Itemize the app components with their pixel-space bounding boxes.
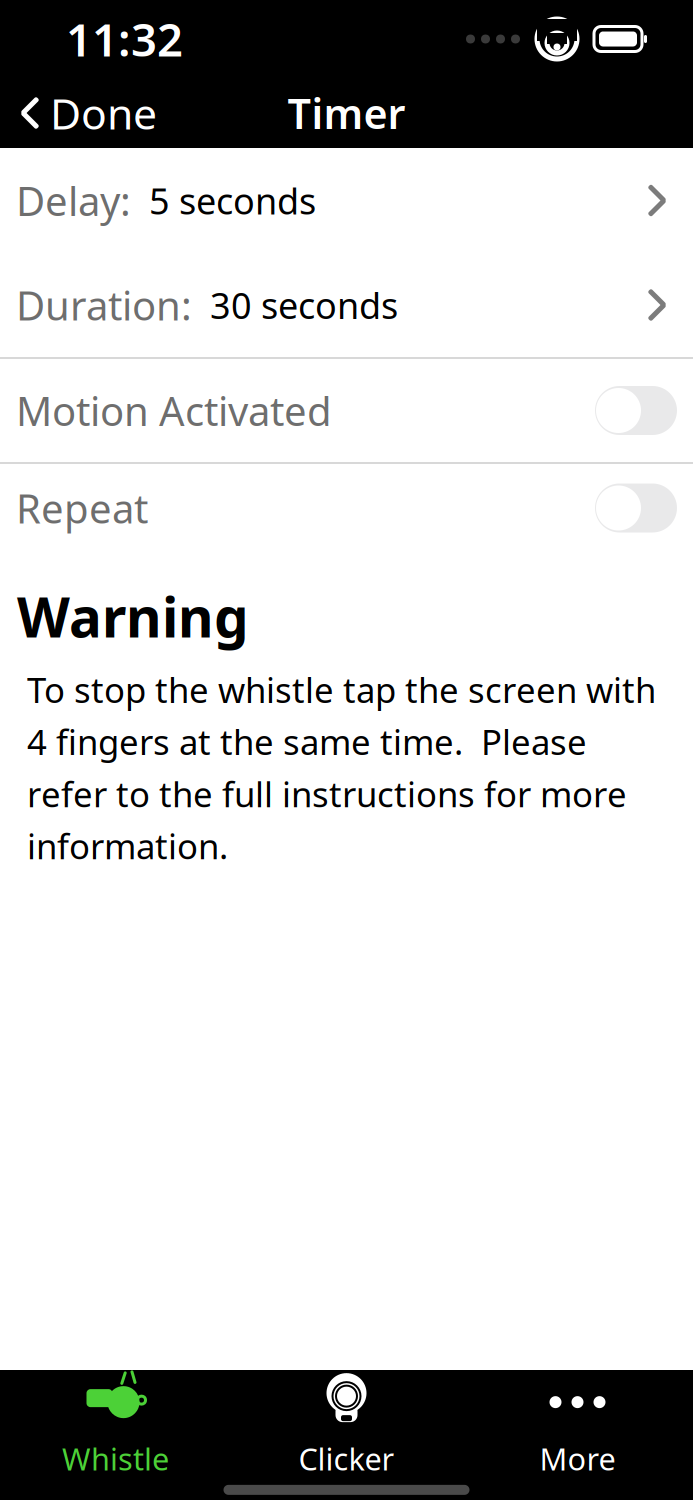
- staticText: More: [539, 1438, 615, 1479]
- button[interactable]: More: [462, 1369, 693, 1485]
- staticText: Warning: [17, 580, 249, 653]
- staticText: Whistle: [62, 1438, 169, 1479]
- staticText: To stop the whistle tap the screen with …: [27, 667, 656, 869]
- button[interactable]: Delay:: [0, 148, 693, 253]
- staticText: Delay:: [16, 174, 131, 227]
- staticText: 30 seconds: [192, 281, 398, 329]
- button[interactable]: Duration:: [0, 253, 693, 357]
- staticText: 11:32: [66, 9, 183, 69]
- button[interactable]: Whistle: [0, 1369, 231, 1485]
- staticText: Clicker: [298, 1438, 394, 1479]
- staticText: Motion Activated: [16, 384, 332, 437]
- button[interactable]: Clicker: [231, 1369, 462, 1485]
- staticText: Done: [50, 85, 157, 141]
- staticText: Duration:: [16, 278, 192, 331]
- button[interactable]: Motion Activated: [0, 359, 693, 462]
- staticText: Timer: [287, 86, 405, 140]
- staticText: 5 seconds: [131, 177, 316, 224]
- button[interactable]: Repeat: [0, 464, 693, 552]
- button[interactable]: Done: [0, 75, 157, 151]
- staticText: Repeat: [16, 481, 148, 534]
